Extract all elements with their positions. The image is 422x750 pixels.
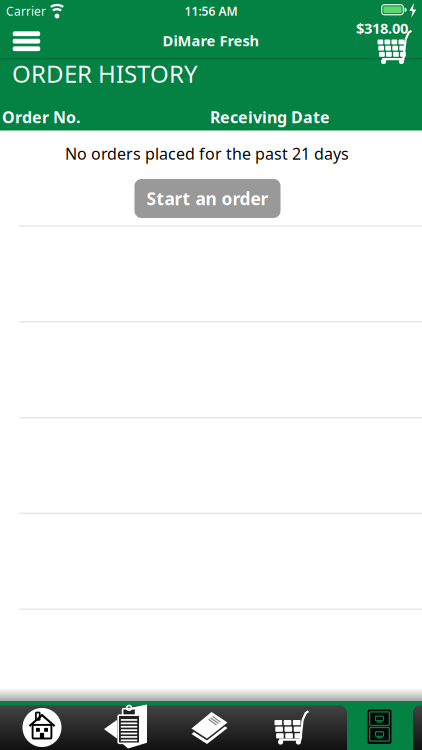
button[interactable]: Catalog [168,701,252,750]
button[interactable]: Menu [13,31,41,51]
staticText: Receiving Date [210,106,330,128]
staticText: ORDER HISTORY [12,58,198,89]
staticText: Order No. [2,106,80,128]
staticText: 11:56 AM [184,3,237,19]
staticText: Start an order [146,187,268,210]
staticText: No orders placed for the past 21 days [65,143,349,164]
staticText: Carrier [6,3,46,19]
button[interactable]: Cart [356,20,412,62]
button[interactable]: Start an order [134,179,280,218]
button[interactable]: Cart [249,701,333,750]
button[interactable]: Order History [84,701,168,750]
button[interactable]: More [413,701,422,750]
button[interactable]: Orders Archive [347,701,412,750]
staticText: DiMare Fresh [162,31,259,50]
staticText: $318.00 [356,18,408,38]
button[interactable]: Home [0,701,84,750]
